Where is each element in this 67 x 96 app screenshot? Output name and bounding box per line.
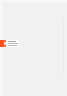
other: Logo [0, 40, 6, 47]
button[interactable]: Logo [0, 39, 19, 47]
